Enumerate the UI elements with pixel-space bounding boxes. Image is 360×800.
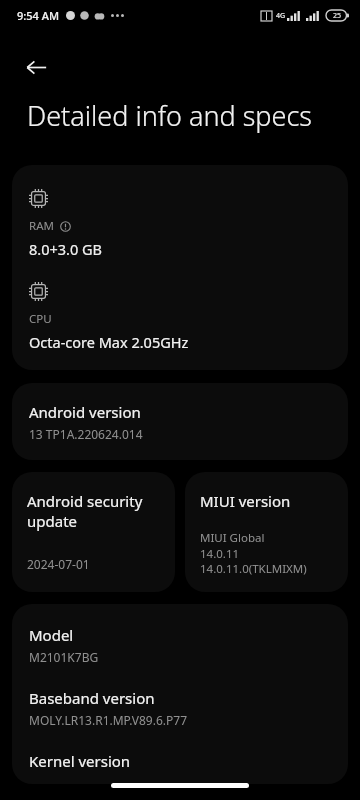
button[interactable]: Model <box>12 604 348 784</box>
staticText: Model <box>29 625 74 645</box>
button[interactable]: MIUI version <box>185 472 348 592</box>
staticText: Android security update <box>27 491 165 531</box>
staticText: MOLY.LR13.R1.MP.V89.6.P77 <box>29 712 188 728</box>
staticText: 4G <box>276 11 286 21</box>
staticText: 2024-07-01 <box>27 556 90 572</box>
staticText: Kernel version <box>29 751 131 771</box>
button[interactable]: RAM <box>12 165 348 370</box>
staticText: MIUI Global 14.0.11 14.0.11.0(TKLMIXM) <box>200 530 307 576</box>
staticText: Detailed info and specs <box>27 97 312 134</box>
staticText: Android version <box>29 402 141 422</box>
staticText: MIUI version <box>200 491 291 511</box>
staticText: M2101K7BG <box>29 649 99 665</box>
staticText: 9:54 AM <box>17 8 60 23</box>
staticText: Baseband version <box>29 688 155 708</box>
staticText: CPU <box>29 311 52 327</box>
staticText: 13 TP1A.220624.014 <box>29 426 143 442</box>
staticText: 8.0+3.0 GB <box>29 239 102 259</box>
button[interactable]: Android security update <box>12 472 175 592</box>
button[interactable]: Back <box>14 45 58 89</box>
staticText: 25 <box>333 11 342 21</box>
staticText: Octa-core Max 2.05GHz <box>29 332 189 352</box>
staticText: RAM <box>29 218 54 234</box>
button[interactable]: Android version <box>12 383 348 460</box>
